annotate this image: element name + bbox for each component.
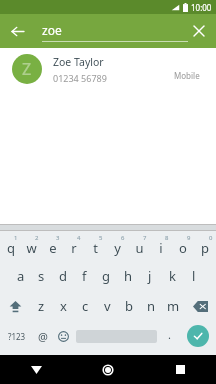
staticText: h (124, 267, 133, 285)
button[interactable]: m (162, 291, 184, 321)
button[interactable]: z (31, 291, 52, 321)
staticText: 0 (209, 234, 213, 242)
button[interactable]: e (42, 231, 63, 261)
button[interactable]: Home (72, 355, 144, 384)
button[interactable]: q (0, 231, 21, 261)
button[interactable]: j (139, 261, 161, 291)
staticText: y (114, 239, 121, 257)
staticText: a (17, 267, 25, 285)
staticText: 1 (14, 234, 18, 242)
staticText: t (93, 239, 98, 257)
staticText: b (125, 297, 133, 315)
button[interactable]: n (140, 291, 162, 321)
button[interactable]: p (194, 231, 216, 261)
button[interactable]: Z (0, 48, 216, 90)
staticText: @ (38, 329, 48, 344)
staticText: o (179, 239, 187, 257)
button[interactable]: l (183, 261, 205, 291)
staticText: 01234 56789 (53, 72, 107, 84)
staticText: 8 (165, 234, 169, 242)
button[interactable]: Shift (0, 291, 31, 321)
button[interactable]: o (172, 231, 194, 261)
staticText: n (147, 297, 156, 315)
staticText: 7 (143, 234, 147, 242)
staticText: l (192, 267, 196, 285)
button[interactable]: t (84, 231, 106, 261)
staticText: s (38, 267, 45, 285)
staticText: 9 (187, 234, 191, 242)
staticText: j (148, 267, 152, 285)
staticText: m (167, 297, 180, 315)
button[interactable]: Space (73, 321, 159, 351)
staticText: Zoe Taylor (53, 55, 104, 69)
button[interactable]: y (106, 231, 128, 261)
staticText: u (135, 239, 144, 257)
button[interactable]: r (63, 231, 84, 261)
staticText: f (82, 267, 87, 285)
button[interactable]: Back (0, 14, 34, 48)
button[interactable]: f (73, 261, 95, 291)
staticText: d (59, 267, 67, 285)
staticText: r (71, 239, 77, 257)
button[interactable]: w (21, 231, 42, 261)
button[interactable]: Back (0, 355, 72, 384)
staticText: Mobile (174, 70, 200, 81)
button[interactable]: Recents (144, 355, 216, 384)
staticText: i (159, 239, 163, 257)
staticText: Z (22, 58, 32, 80)
staticText: p (201, 239, 209, 257)
staticText: k (169, 267, 176, 285)
staticText: 3 (56, 234, 60, 242)
staticText: x (60, 297, 67, 315)
button[interactable]: a (10, 261, 31, 291)
staticText: g (102, 267, 110, 285)
button[interactable]: ?123 (0, 321, 33, 351)
button[interactable]: x (52, 291, 74, 321)
button[interactable]: Enter (179, 321, 216, 351)
button[interactable]: v (96, 291, 118, 321)
staticText: 4 (77, 234, 81, 242)
button[interactable]: b (118, 291, 140, 321)
staticText: 5 (99, 234, 103, 242)
staticText: e (49, 239, 57, 257)
button[interactable]: g (95, 261, 117, 291)
button[interactable]: s (31, 261, 52, 291)
button[interactable]: . (159, 321, 179, 351)
staticText: zoe (42, 22, 62, 38)
button[interactable]: h (117, 261, 139, 291)
staticText: 6 (121, 234, 125, 242)
staticText: q (7, 239, 15, 257)
staticText: . (168, 327, 171, 342)
button[interactable]: d (52, 261, 73, 291)
staticText: ?123 (8, 331, 26, 342)
staticText: 2 (35, 234, 39, 242)
staticText: z (38, 297, 45, 315)
staticText: 10:00 (191, 2, 212, 13)
staticText: v (104, 297, 111, 315)
button[interactable]: @ (33, 321, 53, 351)
button[interactable]: Clear search (182, 14, 216, 48)
button[interactable]: k (161, 261, 183, 291)
staticText: w (26, 239, 37, 257)
button[interactable]: Emoji (53, 321, 73, 351)
button[interactable]: i (150, 231, 172, 261)
button[interactable]: Backspace (184, 291, 216, 321)
button[interactable]: u (128, 231, 150, 261)
button[interactable]: c (74, 291, 96, 321)
staticText: c (82, 297, 89, 315)
